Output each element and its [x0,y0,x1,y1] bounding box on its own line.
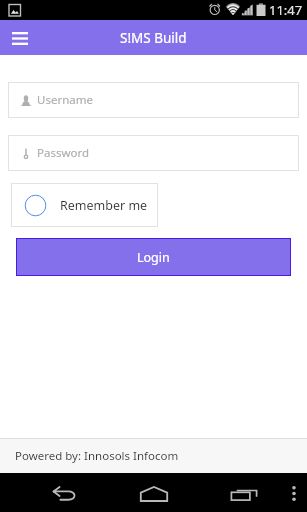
staticText: Remember me [60,197,148,214]
staticText: Login [137,249,170,266]
button[interactable]: Open navigation drawer [6,24,34,52]
button[interactable]: Remember me [11,183,158,227]
button[interactable]: More options [281,473,307,512]
button[interactable]: Password [8,135,299,171]
button[interactable]: Login [17,239,290,275]
staticText: 11:47 [269,1,303,19]
staticText: Password [37,145,90,161]
button[interactable]: Back [42,473,90,512]
staticText: S!MS Build [120,29,187,47]
staticText: Username [37,92,93,108]
button[interactable]: Home [130,473,178,512]
button[interactable]: Username [8,82,299,118]
staticText: Powered by: Innosols Infocom [15,448,179,464]
button[interactable]: Recent apps [220,473,268,512]
